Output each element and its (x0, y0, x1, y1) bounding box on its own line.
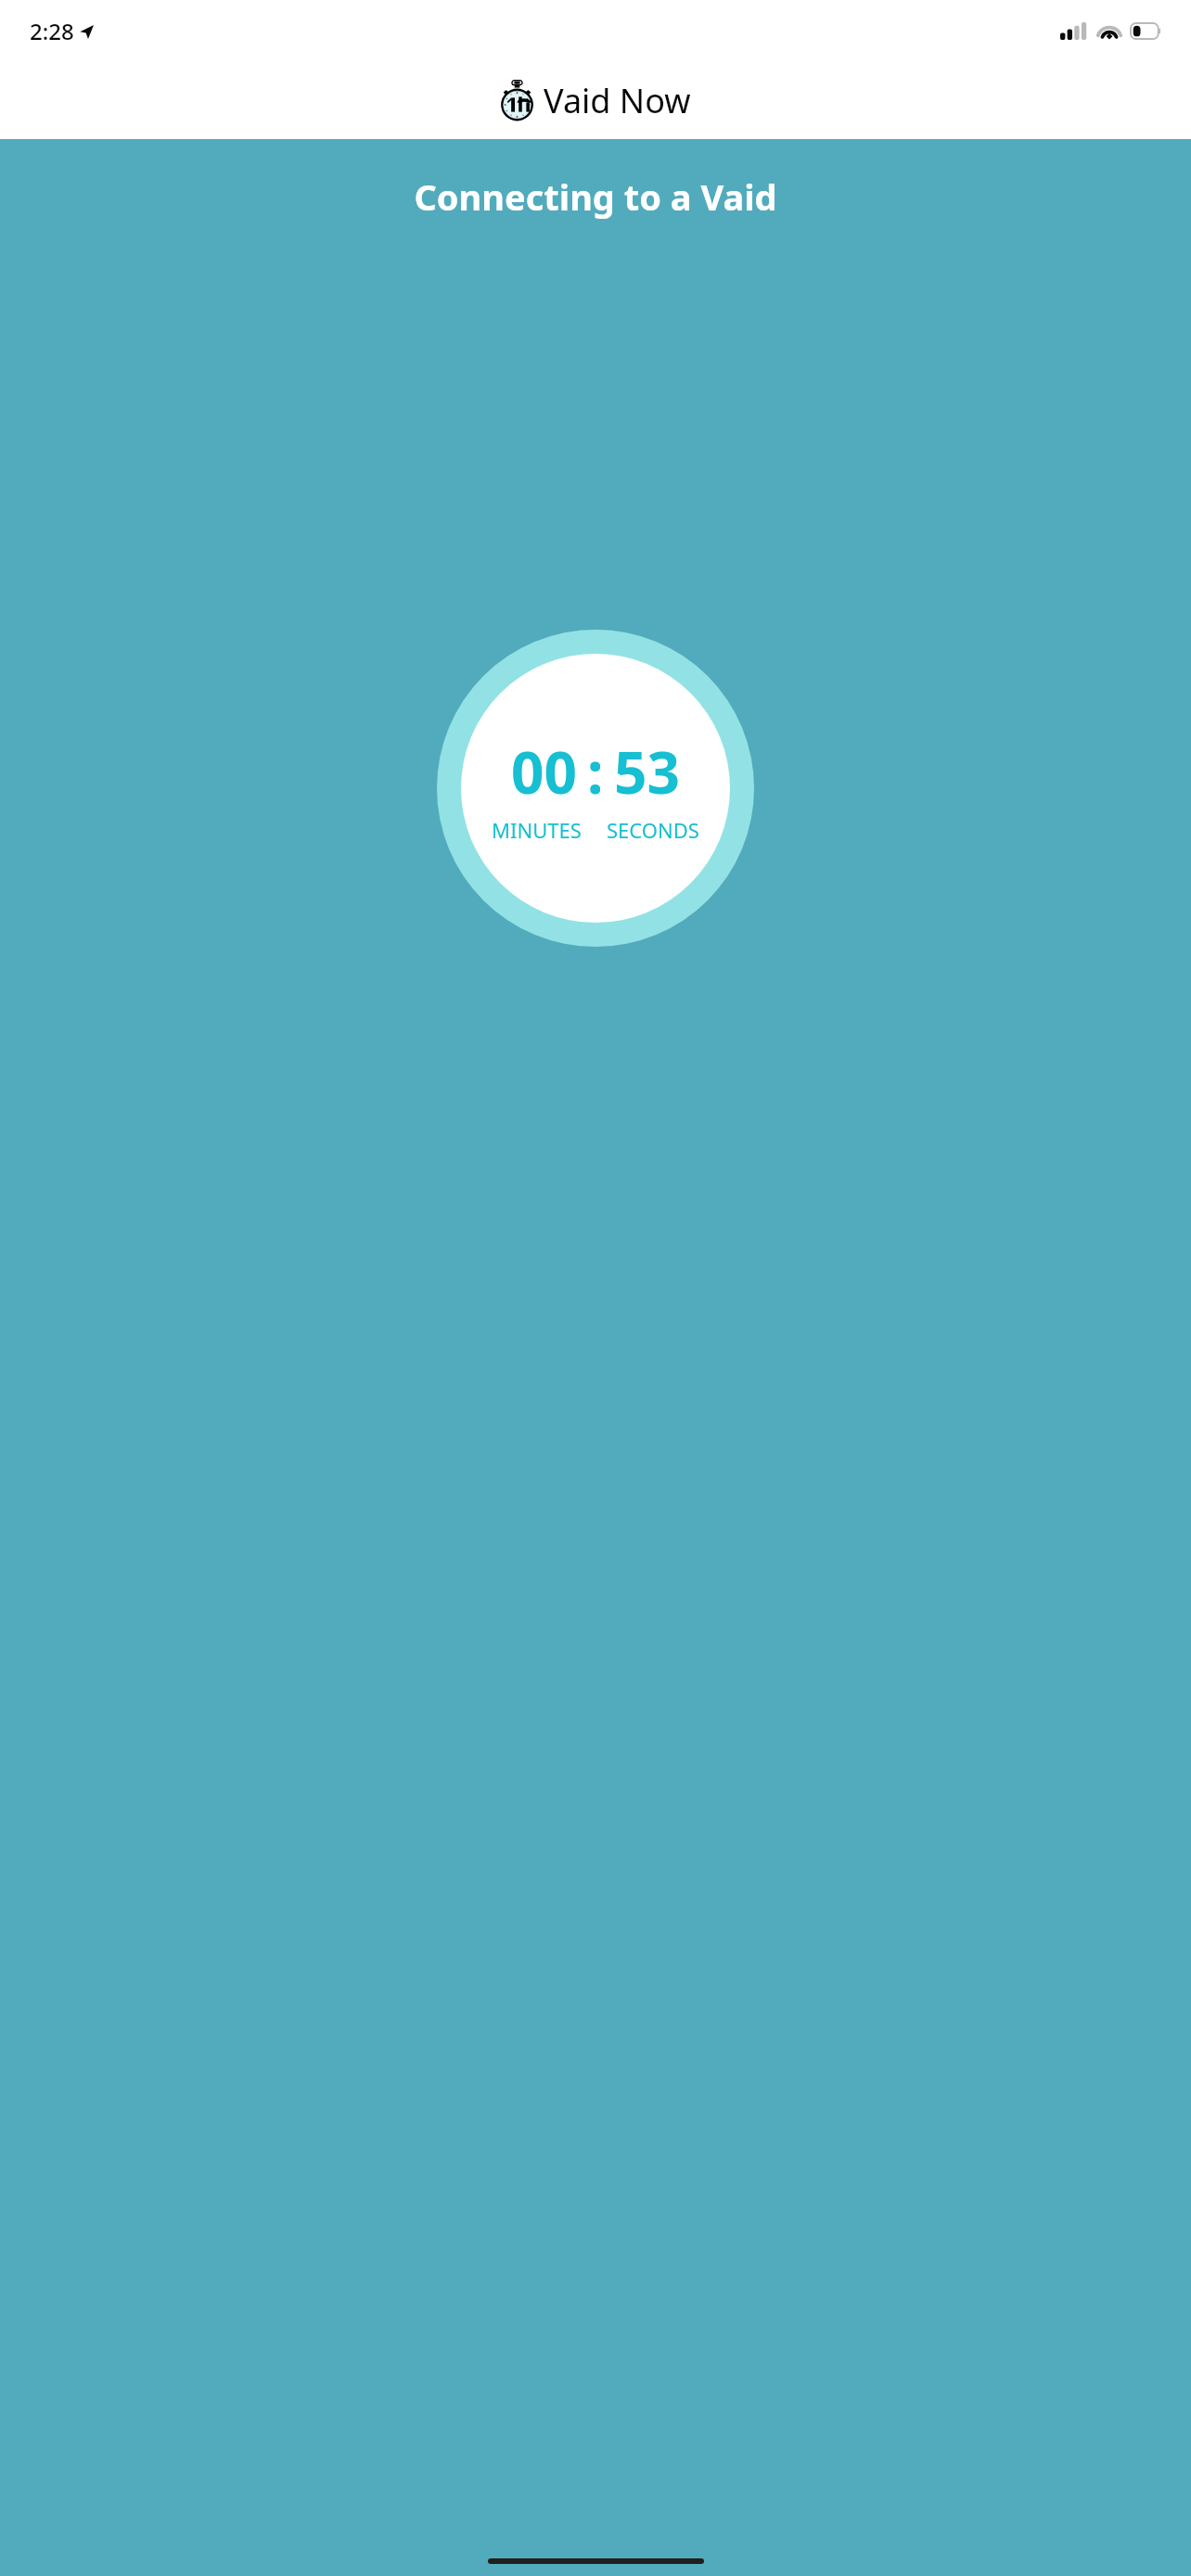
button[interactable]: Countdown timer (437, 630, 754, 947)
staticText: Vaid Now (544, 78, 691, 123)
staticText: SECONDS (607, 816, 699, 844)
button[interactable]: Vaid Now (493, 78, 698, 123)
staticText: 00 (511, 733, 577, 810)
staticText: : (587, 733, 604, 810)
staticText: 53 (614, 733, 680, 810)
staticText: MINUTES (492, 816, 582, 844)
staticText: Connecting to a Vaid (414, 172, 777, 221)
staticText: 2:28 (30, 16, 74, 46)
